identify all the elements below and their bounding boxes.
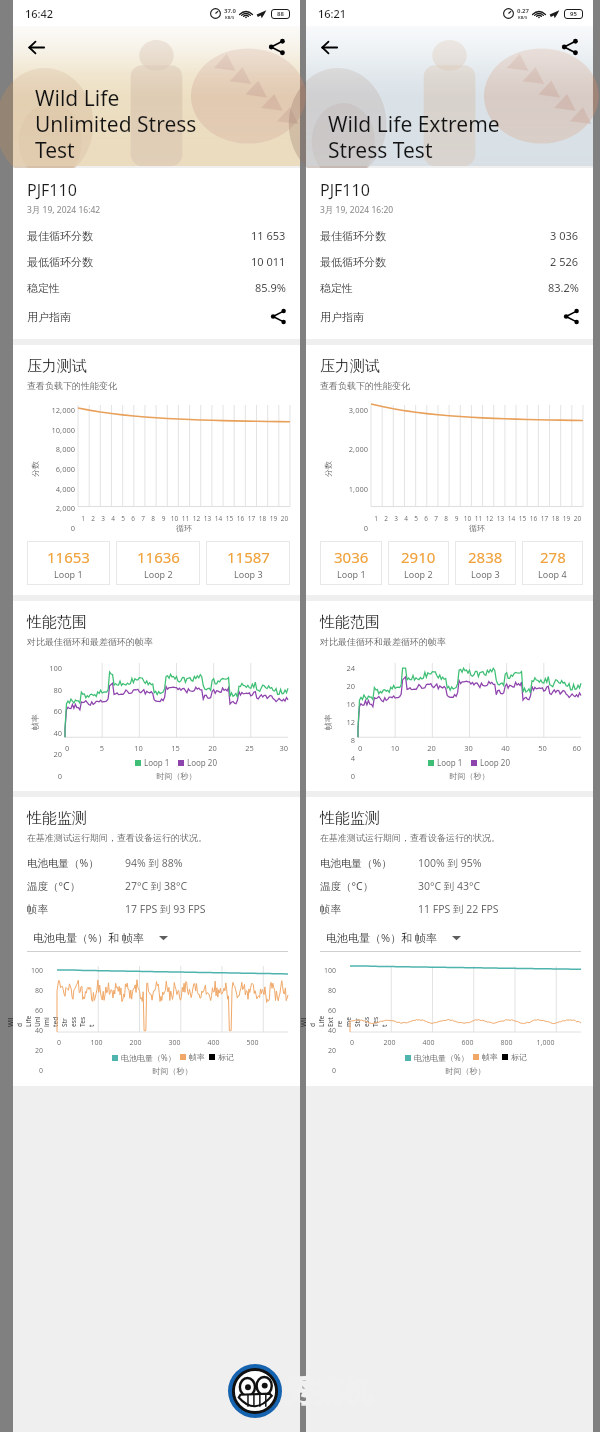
staticText: 电池电量（%）和 帧率 [33, 930, 145, 945]
staticText: 5 [118, 514, 128, 523]
button[interactable]: 用户指南 [320, 309, 579, 324]
staticText: 6 [128, 514, 138, 523]
staticText: 0 [45, 771, 62, 781]
staticText: 8,000 [45, 444, 75, 454]
staticText: 80 [45, 685, 62, 695]
staticText: 10 [462, 514, 473, 523]
button[interactable]: 电池电量（%）和 帧率 [33, 930, 288, 945]
staticText: 13 [495, 514, 506, 523]
staticText: 分数 [323, 461, 333, 477]
staticText: 0 [45, 523, 75, 533]
button[interactable]: 11587 [206, 541, 290, 585]
button[interactable]: Back [312, 30, 346, 64]
staticText: 16 [528, 514, 539, 523]
staticText: 0 [27, 1066, 43, 1076]
staticText: 时间（秒） [358, 771, 581, 781]
staticText: PJF110 [27, 179, 77, 201]
staticText: 40 [45, 728, 62, 738]
staticText: Loop 3 [471, 568, 500, 580]
staticText: 时间（秒） [350, 1066, 581, 1076]
staticText: 0 [358, 743, 377, 753]
button[interactable]: 2838 [455, 541, 516, 585]
staticText: 7 [431, 514, 441, 523]
staticText: 88 [277, 10, 284, 18]
staticText: KB/S [518, 15, 528, 20]
button[interactable]: 2910 [388, 541, 449, 585]
staticText: 电池电量（%） [27, 856, 99, 870]
staticText: 16:42 [25, 6, 54, 21]
staticText: 性能监测 [27, 809, 87, 828]
staticText: 10 [377, 743, 413, 753]
staticText: 0 [350, 1038, 370, 1048]
staticText: 19 [268, 514, 279, 523]
staticText: 查看负载下的性能变化 [27, 380, 117, 391]
staticText: 0 [338, 771, 355, 781]
staticText: 14 [506, 514, 517, 523]
staticText: 83.2% [548, 280, 579, 295]
staticText: 10 [120, 743, 157, 753]
staticText: 12 [338, 717, 355, 727]
button[interactable]: Share [553, 30, 587, 64]
staticText: 200 [370, 1038, 409, 1048]
staticText: 8 [338, 735, 355, 745]
staticText: 压力测试 [320, 357, 380, 376]
staticText: 3月 19, 2024 16:42 [27, 204, 101, 216]
staticText: 1 [371, 514, 381, 523]
staticText: 15 [517, 514, 528, 523]
button[interactable]: 用户指南 [27, 309, 286, 324]
staticText: Loop 20 [187, 757, 218, 768]
staticText: Loop 4 [538, 568, 567, 580]
staticText: 400 [194, 1038, 233, 1048]
button[interactable]: 11653 [27, 541, 110, 585]
staticText: Loop 2 [144, 568, 173, 580]
staticText: Loop 1 [337, 568, 366, 580]
staticText: 100% 到 95% [418, 856, 482, 870]
staticText: 17 FPS 到 93 FPS [125, 902, 206, 916]
staticText: 2910 [401, 547, 436, 567]
button[interactable]: 11636 [116, 541, 200, 585]
staticText: 时间（秒） [57, 1066, 288, 1076]
staticText: 2,000 [338, 444, 368, 454]
staticText: 95 [570, 10, 577, 18]
staticText: 2 [381, 514, 391, 523]
staticText: 电池电量（%） [320, 856, 392, 870]
staticText: 0 [65, 743, 84, 753]
staticText: 8 [148, 514, 158, 523]
staticText: 3月 19, 2024 16:20 [320, 204, 394, 216]
staticText: 3 [391, 514, 401, 523]
staticText: 11 FPS 到 22 FPS [418, 902, 499, 916]
button[interactable]: 电池电量（%）和 帧率 [326, 930, 581, 945]
staticText: 11 [473, 514, 484, 523]
staticText: 18 [550, 514, 561, 523]
button[interactable]: 278 [522, 541, 583, 585]
staticText: 5 [84, 743, 120, 753]
staticText: 85.9% [255, 280, 286, 295]
staticText: 60 [320, 1006, 336, 1016]
button[interactable]: Share [260, 30, 294, 64]
staticText: 11636 [137, 547, 180, 567]
staticText: 24 [338, 663, 355, 673]
staticText: 温度（°C） [27, 879, 81, 893]
staticText: 0 [338, 523, 368, 533]
staticText: 19 [561, 514, 572, 523]
staticText: 帧率 [482, 1052, 498, 1062]
staticText: 800 [487, 1038, 526, 1048]
staticText: 20 [338, 681, 355, 691]
staticText: 12 [191, 514, 202, 523]
staticText: 300 [155, 1038, 194, 1048]
button[interactable]: 3036 [320, 541, 382, 585]
staticText: 2 526 [550, 254, 579, 269]
staticText: 80 [320, 986, 336, 996]
staticText: 80 [27, 986, 43, 996]
button[interactable]: Back [19, 30, 53, 64]
staticText: Loop 1 [144, 757, 170, 768]
staticText: 20 [320, 1046, 336, 1056]
staticText: 20 [572, 514, 583, 523]
staticText: 3 036 [550, 228, 579, 243]
staticText: 压力测试 [27, 357, 87, 376]
staticText: 500 [233, 1038, 272, 1048]
staticText: 电池电量（%）和 帧率 [326, 930, 438, 945]
staticText: PJF110 [320, 179, 370, 201]
staticText: Wild Life Unlimited Stress Test [35, 84, 197, 165]
staticText: 性能范围 [27, 613, 87, 632]
